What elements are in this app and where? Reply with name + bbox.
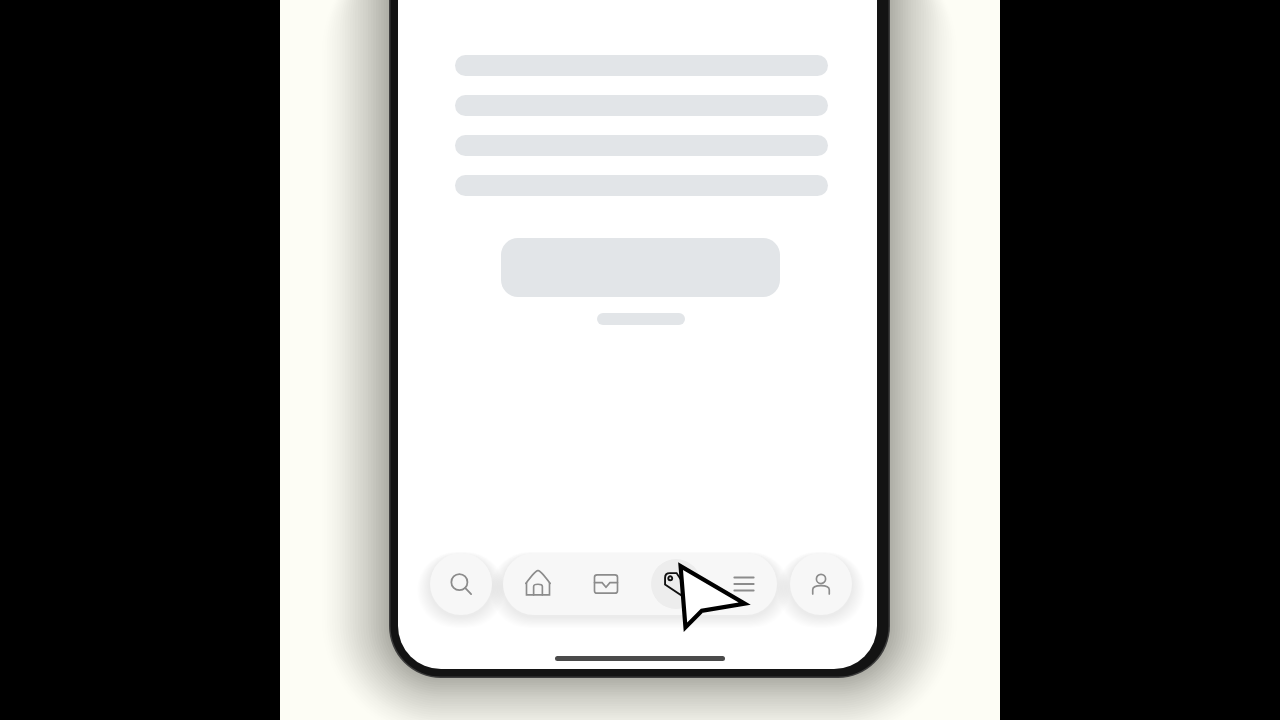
button[interactable]: Profile: [790, 553, 852, 615]
button[interactable]: Search: [430, 553, 492, 615]
button[interactable]: Inbox: [576, 553, 636, 615]
button[interactable]: Menu: [714, 553, 774, 615]
button[interactable]: Home: [508, 553, 568, 615]
button[interactable]: Tags: [646, 553, 706, 615]
